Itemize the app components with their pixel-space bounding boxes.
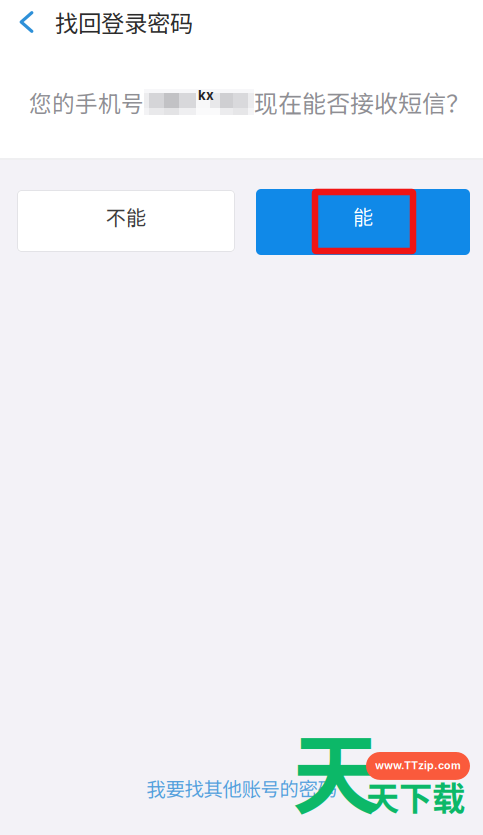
button[interactable]: 我要找其他账号的密码 bbox=[146, 774, 336, 802]
staticText: 您的手机号 bbox=[29, 86, 144, 118]
staticText: 能 bbox=[353, 201, 373, 230]
staticText: 不能 bbox=[106, 202, 146, 231]
button[interactable]: 不能 bbox=[17, 190, 235, 252]
staticText: www.TTzip.com bbox=[375, 759, 461, 772]
staticText: 我要找其他账号的密码 bbox=[146, 774, 336, 802]
staticText: 现在能否接收短信？ bbox=[254, 85, 470, 119]
button[interactable]: Back bbox=[0, 0, 48, 45]
staticText: 找回登录密码 bbox=[55, 5, 193, 39]
button[interactable]: 能 bbox=[256, 189, 470, 255]
staticText: 天下载 bbox=[366, 772, 465, 820]
staticText: 天 bbox=[292, 705, 380, 832]
staticText: kx bbox=[198, 87, 214, 103]
